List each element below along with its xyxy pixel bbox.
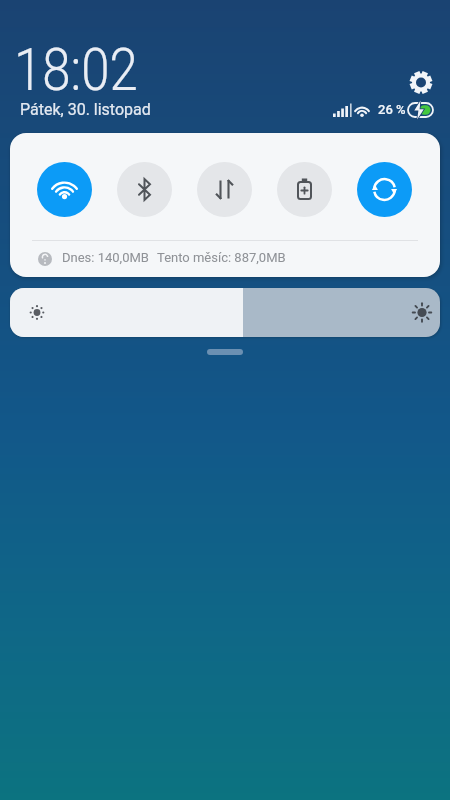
button[interactable] <box>10 288 440 337</box>
button[interactable] <box>277 162 332 217</box>
staticText: Pátek, 30. listopad <box>20 100 151 119</box>
button[interactable] <box>197 162 252 217</box>
staticText: Tento měsíc: 887,0MB <box>157 250 286 265</box>
button[interactable]: Dnes: 140,0MB <box>10 241 440 277</box>
button[interactable] <box>407 68 435 96</box>
staticText: 18:02 <box>14 34 138 104</box>
staticText: Dnes: 140,0MB <box>62 250 149 265</box>
staticText: 26 % <box>378 102 406 117</box>
button[interactable] <box>37 162 92 217</box>
button[interactable] <box>357 162 412 217</box>
button[interactable] <box>207 349 243 355</box>
button[interactable] <box>117 162 172 217</box>
